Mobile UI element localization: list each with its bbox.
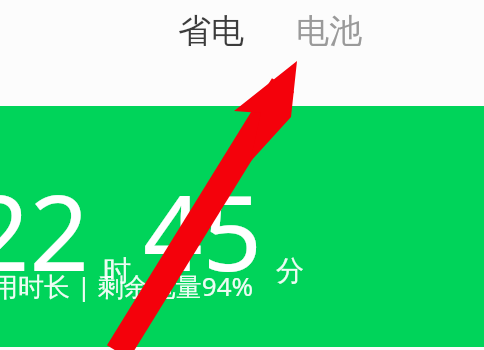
- button[interactable]: 电池: [294, 6, 364, 56]
- button[interactable]: 22: [0, 106, 484, 347]
- staticText: 45: [143, 160, 262, 302]
- staticText: 22: [0, 160, 89, 302]
- staticText: 省电: [178, 10, 244, 52]
- staticText: 可用时长 | 剩余电量94%: [0, 268, 254, 304]
- staticText: 电池: [296, 10, 362, 52]
- staticText: 分: [276, 253, 304, 288]
- button[interactable]: 省电: [176, 6, 246, 56]
- staticText: 时: [103, 253, 131, 288]
